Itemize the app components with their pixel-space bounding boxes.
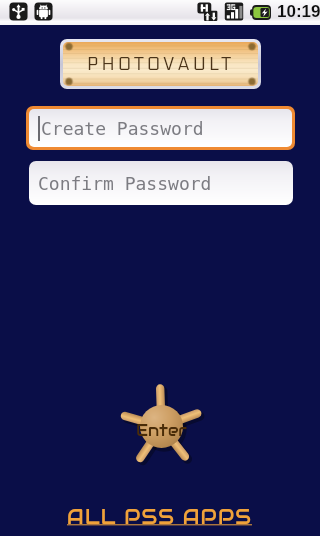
button[interactable]: Confirm Password [29, 161, 293, 205]
button[interactable]: Create Password [29, 109, 292, 147]
button[interactable]: PhotoVault [60, 39, 261, 89]
staticText: 10:19 [277, 2, 320, 21]
staticText: Confirm Password [38, 173, 212, 194]
button[interactable]: ALL PSS APPS [0, 498, 320, 536]
staticText: ALL PSS APPS [67, 504, 253, 529]
button[interactable]: Enter [115, 380, 208, 473]
staticText: PHOTOVAULT [87, 54, 234, 75]
staticText: Enter [136, 420, 188, 440]
staticText: Create Password [41, 118, 204, 139]
